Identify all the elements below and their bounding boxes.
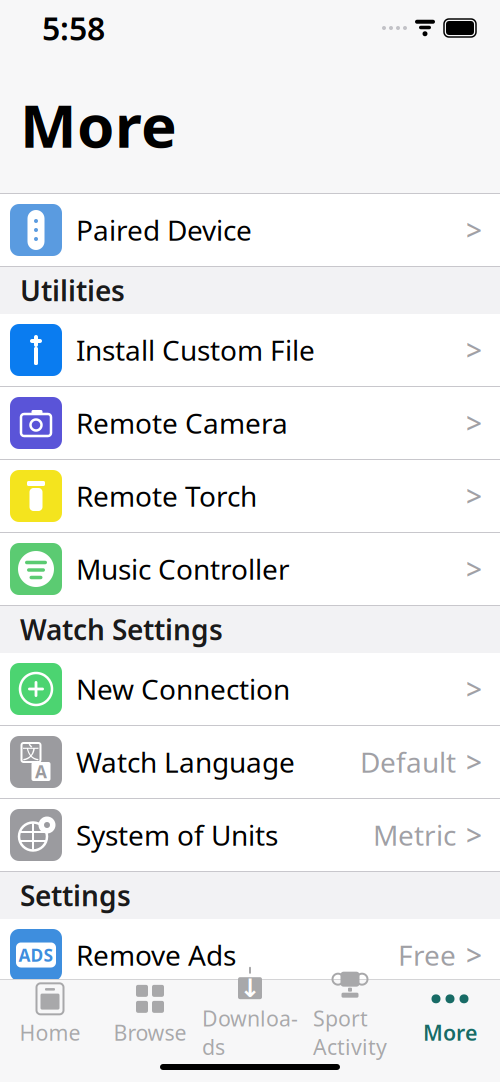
button[interactable]: 文 bbox=[0, 726, 500, 799]
staticText: > bbox=[466, 743, 482, 781]
staticText: ADS bbox=[18, 943, 53, 966]
staticText: Remove Ads bbox=[76, 936, 236, 974]
button[interactable]: ↓ bbox=[200, 984, 300, 1046]
staticText: ↓ bbox=[239, 974, 260, 1003]
staticText: Music Controller bbox=[76, 550, 290, 588]
button[interactable]: New Connection bbox=[0, 653, 500, 726]
staticText: Downloads bbox=[202, 1004, 298, 1061]
staticText: Utilities bbox=[20, 272, 125, 309]
button[interactable]: Paired Device bbox=[0, 194, 500, 267]
staticText: Metric bbox=[373, 816, 456, 854]
staticText: > bbox=[466, 404, 482, 442]
staticText: 5:58 bbox=[42, 7, 105, 49]
staticText: Default bbox=[360, 743, 456, 781]
button[interactable]: Home bbox=[0, 984, 100, 1046]
staticText: > bbox=[466, 936, 482, 974]
button[interactable]: ADS bbox=[0, 919, 500, 992]
button[interactable]: System of Units bbox=[0, 799, 500, 872]
staticText: 文 bbox=[22, 742, 39, 763]
staticText: New Connection bbox=[76, 670, 290, 708]
staticText: > bbox=[466, 670, 482, 708]
staticText: Install Custom File bbox=[76, 331, 315, 369]
staticText: Browse bbox=[113, 1018, 186, 1047]
button[interactable]: Remote Torch bbox=[0, 460, 500, 533]
button[interactable]: Browse bbox=[100, 984, 200, 1046]
staticText: > bbox=[466, 550, 482, 588]
staticText: > bbox=[466, 477, 482, 515]
staticText: Remote Camera bbox=[76, 404, 288, 442]
staticText: Watch Settings bbox=[20, 611, 223, 648]
staticText: > bbox=[466, 816, 482, 854]
button[interactable]: Music Controller bbox=[0, 533, 500, 606]
button[interactable]: Sport Activity bbox=[300, 984, 400, 1046]
staticText: Home bbox=[19, 1018, 80, 1047]
staticText: Settings bbox=[20, 877, 131, 914]
staticText: More bbox=[423, 1018, 477, 1047]
button[interactable]: More bbox=[400, 984, 500, 1046]
staticText: Watch Language bbox=[76, 743, 295, 781]
staticText: Remote Torch bbox=[76, 477, 257, 515]
staticText: System of Units bbox=[76, 816, 278, 854]
button[interactable]: Remote Camera bbox=[0, 387, 500, 460]
staticText: More bbox=[20, 85, 177, 164]
staticText: > bbox=[466, 331, 482, 369]
button[interactable]: Install Custom File bbox=[0, 314, 500, 387]
staticText: A bbox=[35, 760, 47, 783]
staticText: > bbox=[466, 211, 482, 249]
staticText: Free bbox=[398, 936, 456, 974]
staticText: Paired Device bbox=[76, 211, 252, 249]
staticText: Sport Activity bbox=[313, 1004, 387, 1061]
